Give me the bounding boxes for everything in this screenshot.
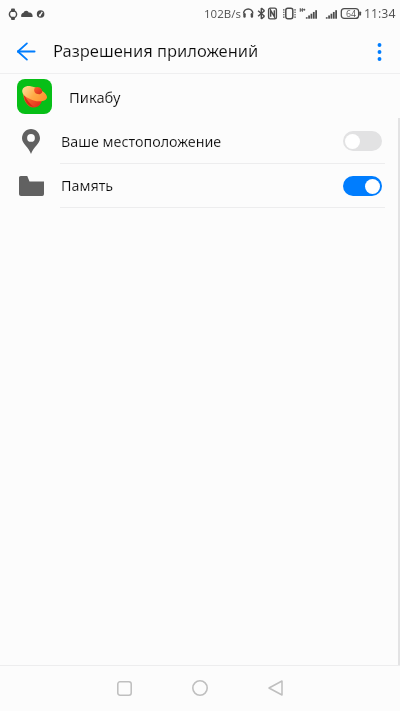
- button[interactable]: Включить: [343, 131, 382, 151]
- button[interactable]: Назад: [6, 31, 46, 71]
- staticText: Память: [61, 176, 114, 195]
- staticText: 102B/s: [204, 6, 241, 22]
- button[interactable]: Выключить: [343, 176, 382, 196]
- button[interactable]: Память: [0, 164, 400, 207]
- staticText: Пикабу: [69, 87, 121, 107]
- button[interactable]: Главный экран: [177, 666, 223, 710]
- button[interactable]: Назад: [252, 666, 298, 710]
- staticText: 64: [346, 8, 357, 20]
- button[interactable]: Пикабу: [0, 74, 400, 119]
- staticText: Ваше местоположение: [61, 132, 222, 151]
- staticText: Разрешения приложений: [53, 39, 259, 61]
- button[interactable]: Недавние приложения: [101, 666, 147, 710]
- button[interactable]: Ещё: [357, 26, 400, 73]
- staticText: 11:34: [364, 5, 396, 22]
- button[interactable]: Ваше местоположение: [0, 119, 400, 163]
